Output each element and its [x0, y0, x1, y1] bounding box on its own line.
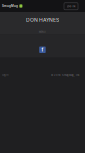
button[interactable]: Facebook: [39, 46, 46, 53]
staticText: MENU: [39, 31, 46, 33]
staticText: SmugMug: [2, 4, 18, 8]
button[interactable]: MENU: [0, 30, 85, 34]
staticText: DON HAYNES: [26, 17, 59, 23]
button[interactable]: SmugMug: [0, 0, 24, 12]
staticText: LOG IN: [66, 5, 75, 8]
staticText: Log In: [2, 74, 8, 76]
button[interactable]: Log In: [2, 72, 12, 77]
button[interactable]: LOG IN: [64, 3, 78, 10]
staticText: f: [41, 47, 43, 52]
staticText: © 2018 SmugMug, Inc.: [51, 73, 80, 76]
